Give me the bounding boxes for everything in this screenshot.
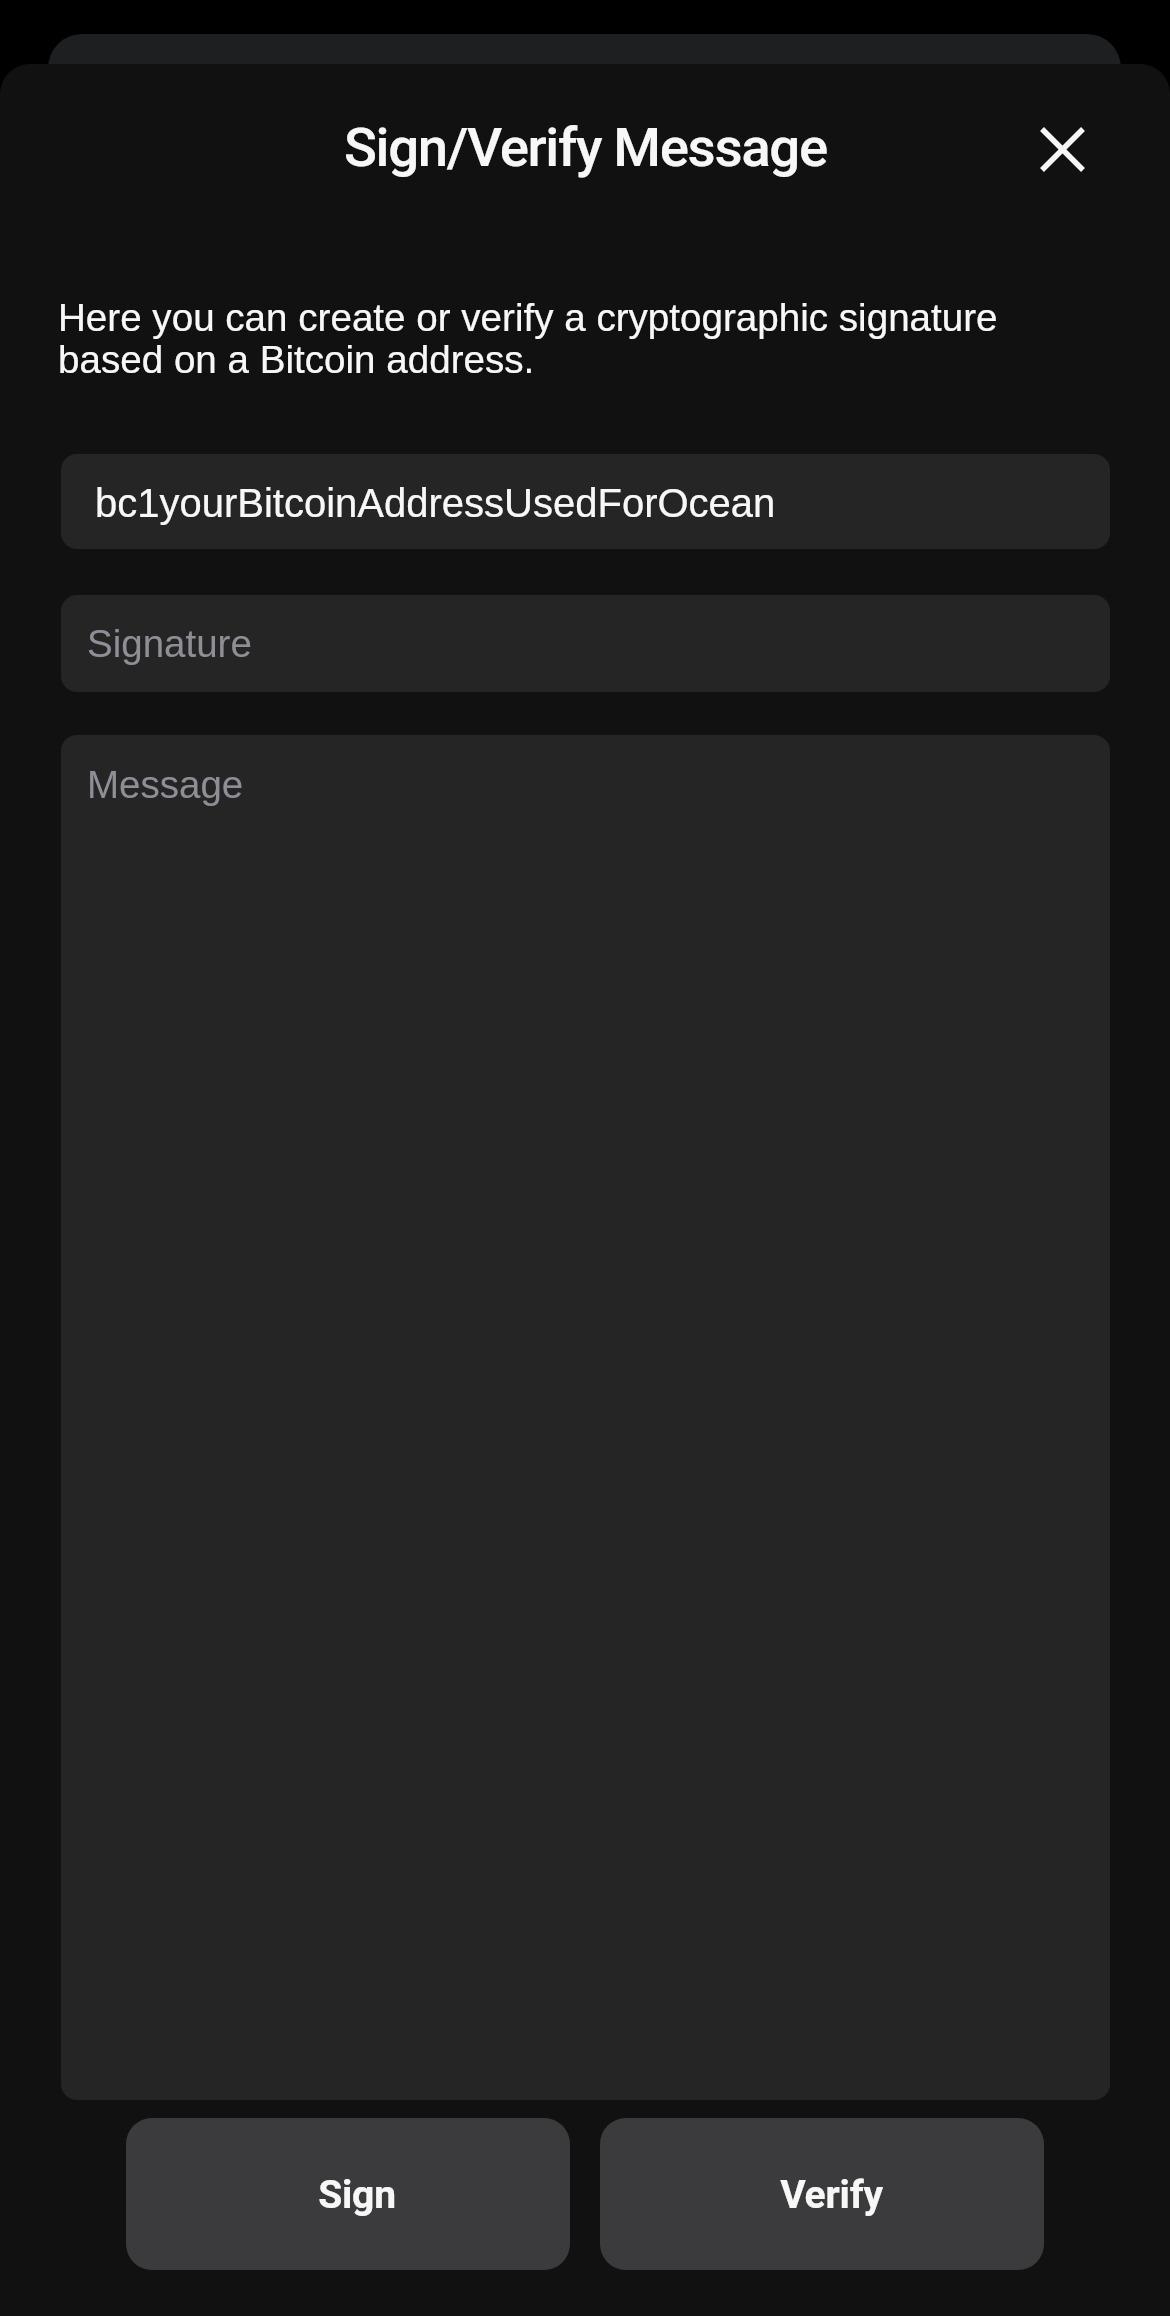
staticText: Message: [87, 763, 244, 806]
staticText: Verify: [780, 2172, 883, 2218]
staticText: Sign/Verify Message: [344, 115, 827, 179]
button[interactable]: Sign: [126, 2118, 570, 2270]
button[interactable]: Verify: [600, 2118, 1044, 2270]
button[interactable]: bc1yourBitcoinAddressUsedForOcean: [61, 454, 1110, 549]
button[interactable]: Close: [1024, 111, 1100, 187]
staticText: Sign: [318, 2172, 396, 2218]
staticText: bc1yourBitcoinAddressUsedForOcean: [95, 481, 776, 526]
button[interactable]: Signature: [61, 595, 1110, 692]
staticText: Here you can create or verify a cryptogr…: [58, 296, 998, 381]
button[interactable]: Message: [61, 735, 1110, 2100]
staticText: Signature: [87, 622, 252, 665]
